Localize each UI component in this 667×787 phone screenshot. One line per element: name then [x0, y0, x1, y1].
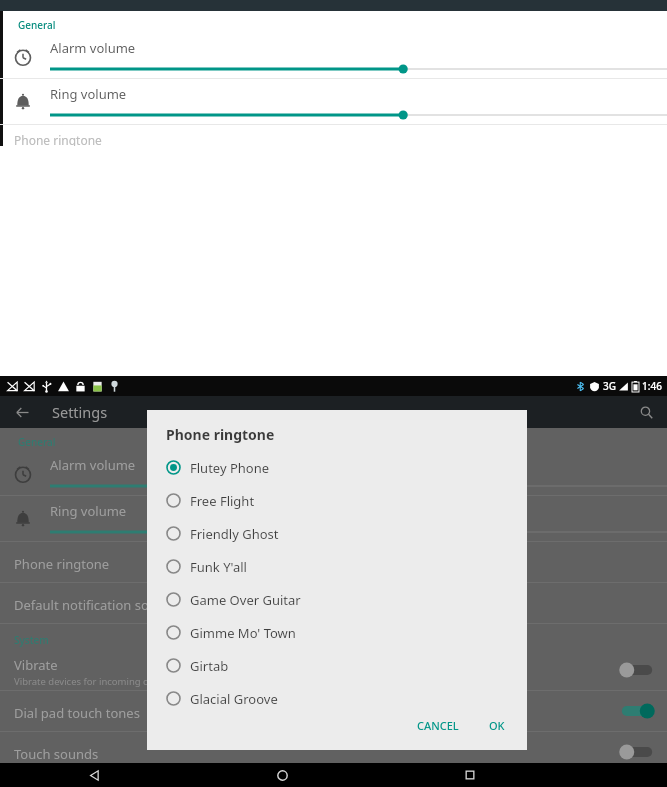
staticText: CANCEL [417, 718, 459, 733]
button[interactable]: Back [8, 398, 36, 426]
button[interactable]: Funk Y'all [147, 550, 527, 583]
button[interactable]: Alarm volume [0, 450, 667, 495]
staticText: 1:46 [642, 379, 662, 393]
button[interactable]: Home [188, 763, 376, 787]
button[interactable]: Free Flight [147, 484, 527, 517]
button[interactable]: Recents [376, 763, 564, 787]
staticText: Friendly Ghost [190, 525, 279, 543]
button[interactable]: OK [481, 713, 513, 738]
button[interactable]: Gimme Mo' Town [147, 616, 527, 649]
staticText: Girtab [190, 657, 229, 675]
staticText: Dial pad touch tones [14, 704, 140, 722]
staticText: General [18, 18, 56, 32]
staticText: Flutey Phone [190, 459, 270, 477]
button[interactable]: Girtab [147, 649, 527, 682]
staticText: 3G [603, 379, 616, 393]
button[interactable]: Ring volume [0, 496, 667, 541]
button[interactable]: Touch sounds [0, 732, 667, 772]
staticText: Game Over Guitar [190, 591, 301, 609]
staticText: Phone ringtone [166, 425, 275, 444]
button[interactable]: Flutey Phone [147, 451, 527, 484]
button[interactable]: Vibrate [0, 650, 667, 690]
staticText: General [18, 435, 56, 449]
button[interactable]: CANCEL [409, 713, 467, 738]
button[interactable]: Friendly Ghost [147, 517, 527, 550]
button[interactable]: Alarm volume [0, 33, 667, 78]
staticText: OK [489, 718, 505, 733]
button[interactable]: Ring volume [0, 79, 667, 124]
staticText: Default notification sound [14, 596, 173, 614]
staticText: System [14, 633, 49, 647]
button[interactable]: Phone ringtone [0, 542, 667, 582]
staticText: Vibrate [14, 656, 58, 674]
button[interactable]: Game Over Guitar [147, 583, 527, 616]
staticText: Free Flight [190, 492, 255, 510]
staticText: Glacial Groove [190, 690, 278, 708]
staticText: Settings [52, 402, 108, 422]
staticText: Alarm volume [50, 456, 136, 474]
staticText: Phone ringtone [14, 132, 102, 146]
button[interactable]: Back [0, 763, 188, 787]
staticText: Alarm volume [50, 39, 136, 57]
staticText: Phone ringtone [14, 555, 110, 573]
staticText: Funk Y'all [190, 558, 247, 576]
button[interactable]: Search [633, 399, 659, 425]
button[interactable]: Default notification sound [0, 583, 667, 623]
button[interactable]: Glacial Groove [147, 682, 527, 715]
staticText: Touch sounds [14, 745, 99, 763]
button[interactable]: Dial pad touch tones [0, 691, 667, 731]
staticText: Vibrate devices for incoming calls [14, 675, 163, 688]
staticText: Ring volume [50, 502, 127, 520]
staticText: Ring volume [50, 85, 127, 103]
staticText: Gimme Mo' Town [190, 624, 296, 642]
